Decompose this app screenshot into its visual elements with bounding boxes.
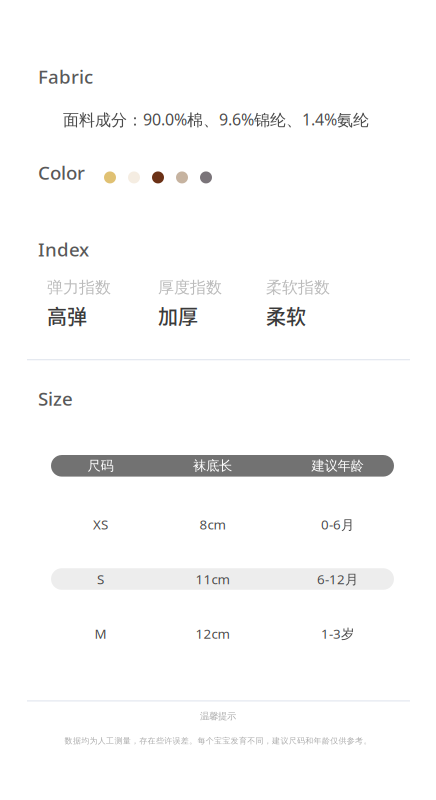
staticText: 加厚 bbox=[158, 301, 198, 330]
button[interactable]: Grey bbox=[200, 171, 212, 183]
staticText: 弹力指数 bbox=[47, 278, 111, 297]
button[interactable]: S bbox=[51, 568, 394, 590]
staticText: M bbox=[94, 625, 106, 642]
staticText: XS bbox=[93, 516, 108, 533]
staticText: 6-12月 bbox=[317, 570, 358, 588]
staticText: 0-6月 bbox=[321, 516, 354, 533]
staticText: 数据均为人工测量，存在些许误差。每个宝宝发育不同，建议尺码和年龄仅供参考。 bbox=[65, 736, 371, 746]
button[interactable]: Cream bbox=[128, 171, 140, 183]
staticText: 尺码 bbox=[87, 458, 113, 474]
staticText: 12cm bbox=[195, 625, 229, 642]
button[interactable]: Taupe bbox=[176, 171, 188, 183]
staticText: 建议年龄 bbox=[311, 458, 363, 474]
staticText: 高弹 bbox=[47, 301, 87, 330]
staticText: 袜底长 bbox=[193, 458, 232, 474]
button[interactable]: XS bbox=[51, 514, 394, 535]
staticText: S bbox=[97, 570, 104, 588]
button[interactable]: Brown bbox=[152, 171, 164, 183]
staticText: Index bbox=[38, 237, 89, 262]
staticText: 面料成分：90.0%棉、9.6%锦纶、1.4%氨纶 bbox=[63, 109, 369, 130]
staticText: 柔软 bbox=[266, 301, 306, 330]
staticText: 8cm bbox=[199, 516, 225, 533]
button[interactable]: Gold bbox=[104, 171, 116, 183]
staticText: Size bbox=[38, 386, 73, 411]
button[interactable]: M bbox=[51, 623, 394, 644]
staticText: 11cm bbox=[195, 570, 229, 588]
staticText: 柔软指数 bbox=[266, 278, 330, 297]
staticText: 温馨提示 bbox=[200, 710, 236, 722]
staticText: Fabric bbox=[38, 64, 93, 89]
staticText: 1-3岁 bbox=[321, 625, 354, 642]
staticText: Color bbox=[38, 160, 85, 185]
staticText: 厚度指数 bbox=[158, 278, 222, 297]
